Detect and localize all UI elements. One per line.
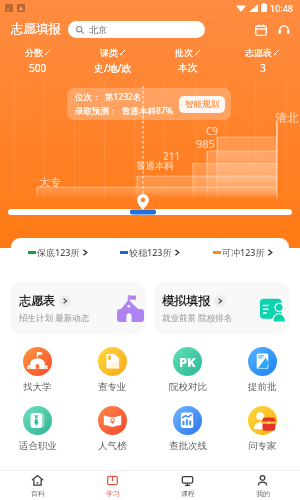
staticText: 10:48 [270, 2, 294, 14]
staticText: 问专家 [248, 440, 277, 452]
button[interactable]: 课类 [75, 47, 150, 75]
staticText: 适合职业 [19, 440, 57, 452]
button[interactable]: 可冲123所 [196, 238, 289, 266]
staticText: 查专业 [98, 381, 127, 393]
staticText: 院校对比 [169, 381, 207, 393]
staticText: 本次 [178, 61, 198, 74]
button[interactable]: 批次 [150, 47, 225, 74]
button[interactable]: 找大学 [0, 347, 75, 393]
staticText: 就业前景 院校排名 [162, 312, 233, 324]
staticText: 课类 [100, 47, 118, 58]
staticText: 招生计划 最新动态 [19, 312, 90, 324]
staticText: 百科 [31, 489, 45, 498]
staticText: 清北 [275, 111, 298, 125]
staticText: 211 [163, 149, 181, 163]
button[interactable]: 学习 [75, 471, 150, 500]
staticText: 提前批 [248, 381, 277, 393]
staticText: 位次： 第1232名 [75, 91, 142, 103]
button[interactable]: 问专家 [225, 406, 300, 452]
staticText: 985 [196, 136, 215, 151]
button[interactable]: 提前批 [225, 347, 300, 393]
staticText: PK [179, 353, 196, 371]
staticText: 大专 [39, 175, 61, 189]
button[interactable]: 分数 [0, 47, 75, 75]
staticText: 学习 [106, 489, 120, 498]
button[interactable]: 较稳123所 [103, 238, 196, 266]
staticText: 志愿表 [245, 47, 272, 58]
button[interactable]: PK [150, 347, 225, 393]
button[interactable]: 模拟填报 [154, 282, 289, 334]
staticText: 普通本科 [136, 160, 174, 172]
button[interactable]: Customer support [276, 22, 291, 37]
button[interactable]: 北京 [68, 21, 205, 38]
staticText: 模拟填报 [162, 293, 210, 308]
staticText: 批次 [175, 47, 193, 58]
button[interactable]: 查批次线 [150, 406, 225, 452]
staticText: 志愿填报 [11, 21, 61, 37]
button[interactable]: 志愿表 [225, 47, 300, 75]
button[interactable]: 课程 [150, 471, 225, 500]
staticText: 查批次线 [169, 440, 207, 452]
button[interactable]: 我的 [225, 471, 300, 500]
staticText: 可冲123所 [222, 246, 265, 258]
staticText: 北京 [89, 24, 107, 35]
staticText: 我的 [256, 489, 270, 498]
staticText: 志愿表 [19, 293, 55, 308]
button[interactable]: 适合职业 [0, 406, 75, 452]
button[interactable]: 百科 [0, 471, 75, 500]
staticText: 找大学 [23, 381, 52, 393]
staticText: 分数 [25, 47, 43, 58]
staticText: 智能规划 [185, 99, 219, 110]
button[interactable]: 查专业 [75, 347, 150, 393]
button[interactable]: Calendar [253, 22, 268, 37]
button[interactable]: 志愿表 [11, 282, 146, 334]
staticText: 课程 [181, 489, 195, 498]
staticText: 500 [29, 61, 47, 75]
staticText: 录取预测： 普通本科87% [75, 105, 173, 117]
button[interactable]: 保底123所 [11, 238, 103, 266]
staticText: 较稳123所 [129, 246, 172, 258]
staticText: 保底123所 [37, 246, 80, 258]
staticText: 3 [260, 61, 266, 75]
staticText: 史/地/政 [94, 61, 132, 75]
button[interactable]: 人气榜 [75, 406, 150, 452]
button[interactable]: 智能规划 [179, 96, 225, 113]
staticText: C9 [206, 124, 219, 138]
staticText: 人气榜 [98, 440, 127, 452]
